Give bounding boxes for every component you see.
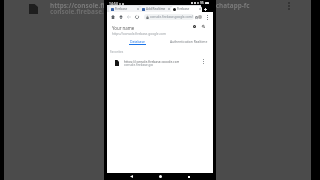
staticText: 14:54 xyxy=(109,1,118,6)
button[interactable]: Database xyxy=(130,39,146,44)
staticText: console.firebase.google.com/u xyxy=(50,7,210,16)
staticText: https://console.firebase.google.com xyxy=(112,32,166,36)
staticText: console.firebase.google.com/u/0/p xyxy=(150,15,194,19)
staticText: https://console.firebase.google.com/u/0/… xyxy=(50,1,265,10)
button[interactable]: Bookmark xyxy=(193,14,199,20)
button[interactable]: https://console.firebase.google.com/u/0/… xyxy=(107,56,213,68)
button[interactable]: Chrome menu xyxy=(207,15,208,20)
button[interactable]: Firebase xyxy=(171,6,202,12)
button[interactable]: New tab xyxy=(202,6,208,12)
staticText: Database xyxy=(130,39,146,44)
button[interactable]: Reload xyxy=(134,14,140,20)
button[interactable]: Firebase Console xyxy=(109,6,140,12)
button[interactable]: Authentication Realtime xyxy=(170,39,208,43)
button[interactable]: Search xyxy=(201,24,206,29)
button[interactable]: Settings xyxy=(192,24,197,29)
button[interactable]: Back xyxy=(127,173,135,180)
staticText: Add Realtime Data xyxy=(146,7,168,11)
button[interactable]: Home xyxy=(156,173,164,180)
button[interactable]: More options xyxy=(203,59,204,64)
staticText: 95 xyxy=(200,1,204,5)
button[interactable]: Navigate xyxy=(118,14,124,20)
staticText: Authentication Realtime xyxy=(170,39,208,43)
button[interactable]: More options xyxy=(288,2,290,10)
staticText: console.firebase.goog xyxy=(124,63,153,67)
button[interactable]: Home xyxy=(110,14,116,20)
button[interactable]: console.firebase.google.com/u/0/p xyxy=(144,14,194,20)
button[interactable]: Profile xyxy=(198,15,202,19)
button[interactable]: Add Realtime Data xyxy=(140,6,171,12)
button[interactable]: Back xyxy=(126,14,132,20)
staticText: Favorites xyxy=(110,50,124,54)
staticText: https://console.firebase.google.com/u/0/… xyxy=(124,59,179,63)
staticText: Firebase Console xyxy=(115,7,137,11)
button[interactable]: Recent apps xyxy=(185,173,193,180)
staticText: Firebase xyxy=(177,7,199,11)
staticText: Your name xyxy=(112,25,135,31)
